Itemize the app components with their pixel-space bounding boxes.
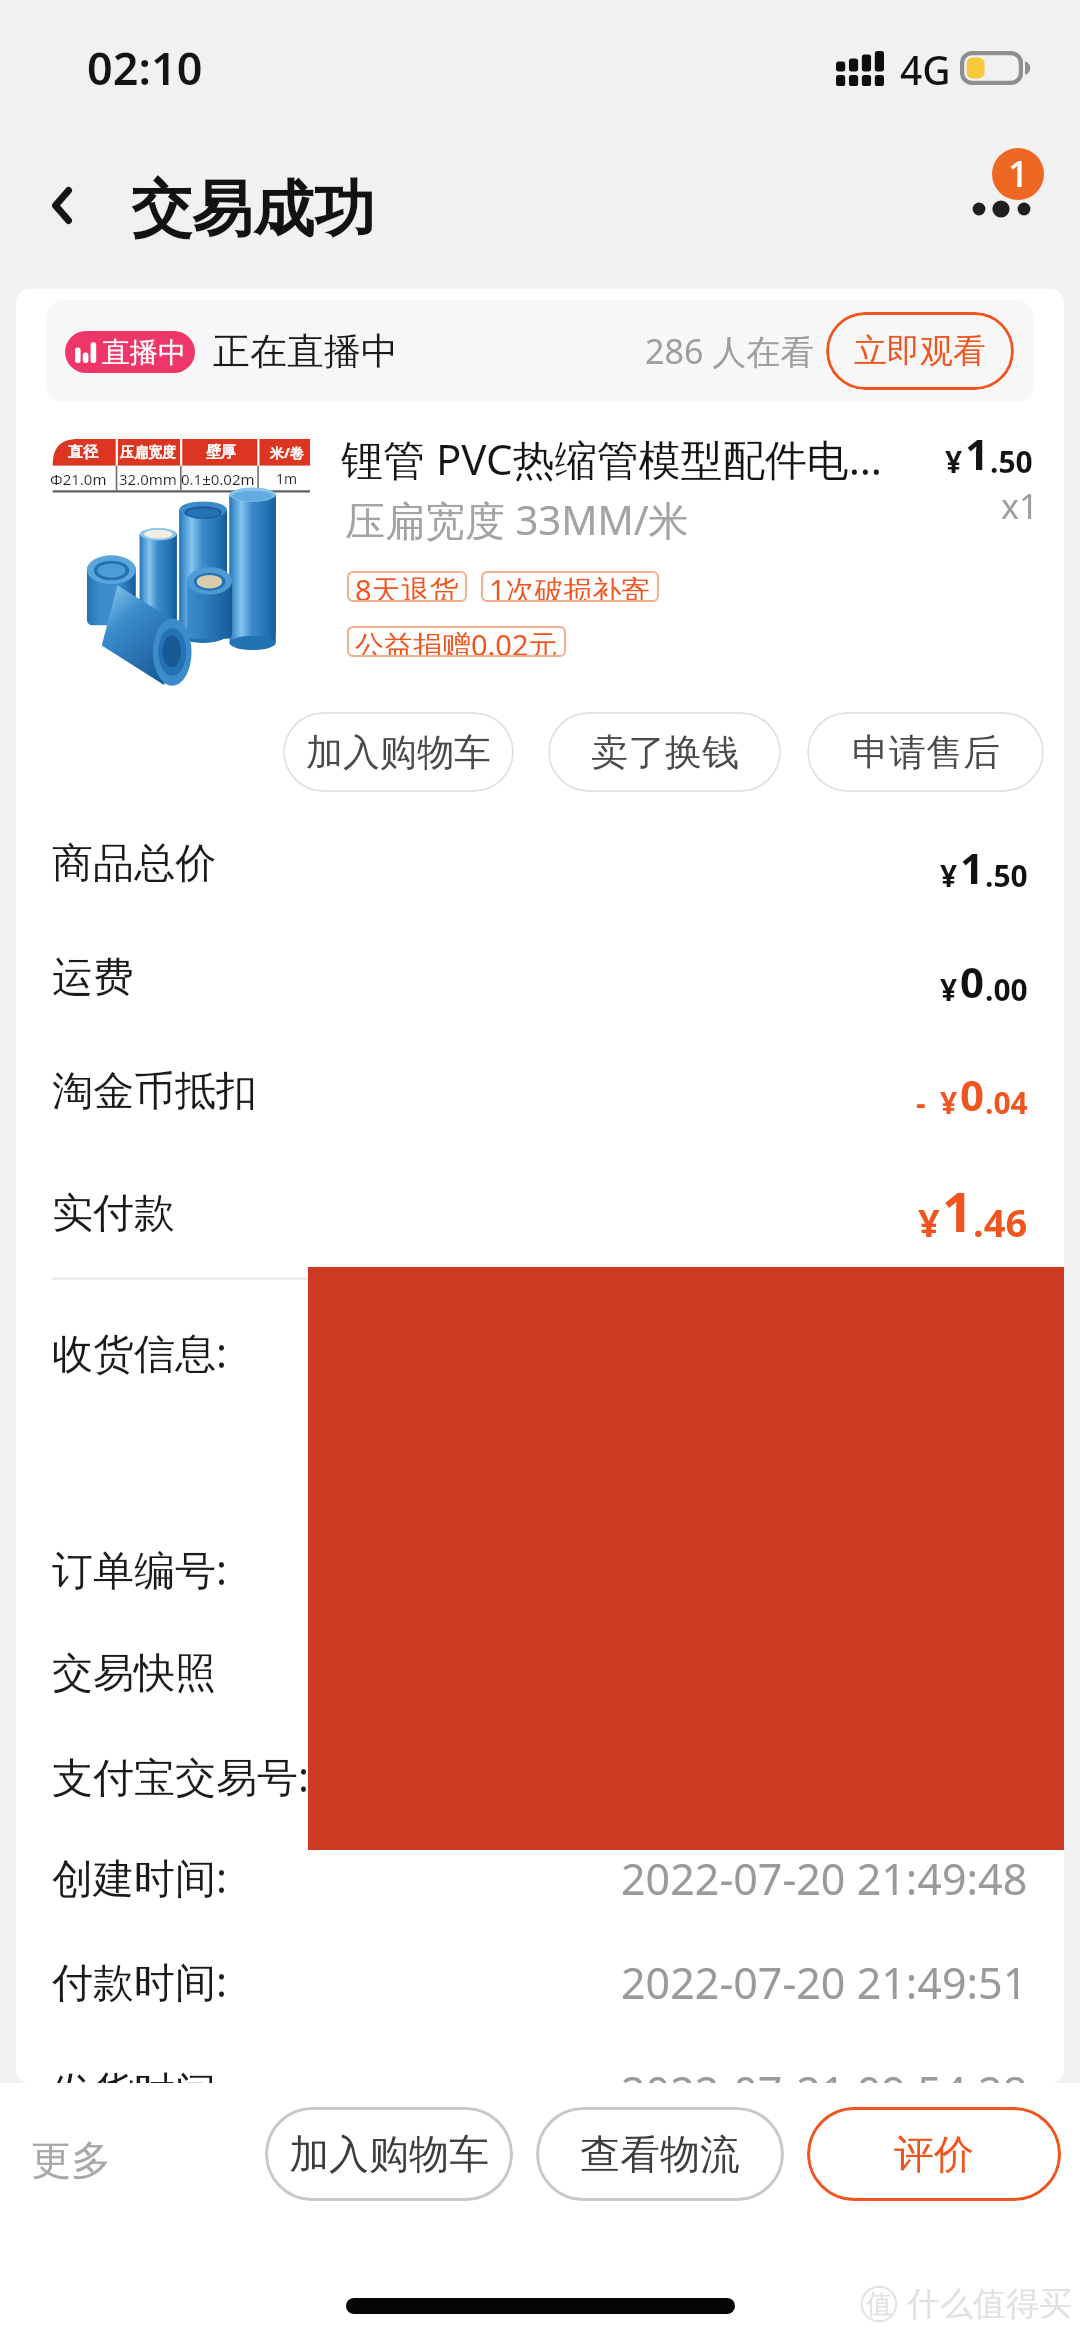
staticText: 2022-07-20 21:49:51	[621, 1953, 1028, 2012]
staticText: 1	[965, 425, 990, 482]
staticText: 交易快照	[52, 1648, 216, 1700]
staticText: .50	[990, 441, 1033, 482]
staticText: 立即观看	[854, 330, 986, 372]
staticText: ¥	[940, 1082, 958, 1123]
button[interactable]: Order item 锂管 PVC热缩管模型配件电	[34, 418, 1046, 706]
button[interactable]: More options	[952, 146, 1054, 242]
staticText: 0	[960, 1066, 985, 1123]
staticText: 压扁宽度	[120, 444, 176, 462]
staticText: 订单编号:	[52, 1541, 227, 1597]
button[interactable]: 评价	[807, 2107, 1061, 2201]
button[interactable]: 1次破损补寄	[481, 571, 659, 602]
staticText: 淘金币抵扣	[52, 1066, 257, 1118]
button[interactable]: 更多	[17, 2119, 125, 2201]
staticText: 1次破损补寄	[489, 570, 651, 601]
button[interactable]	[34, 1939, 1046, 2009]
button[interactable]: 直播中	[46, 300, 1034, 402]
staticText: ¥	[918, 1196, 940, 1248]
staticText: 1m	[276, 469, 298, 488]
staticText: 付款时间:	[52, 1953, 227, 2009]
button[interactable]	[34, 1835, 1046, 1905]
button[interactable]: 公益捐赠0.02元	[347, 626, 566, 657]
staticText: 加入购物车	[306, 729, 491, 776]
staticText: -	[916, 1082, 926, 1123]
staticText: 286 人在看	[645, 328, 815, 374]
staticText: .50	[985, 855, 1028, 896]
staticText: 0	[960, 953, 985, 1010]
button[interactable]: 加入购物车	[283, 712, 514, 792]
button[interactable]	[34, 1634, 1046, 1704]
staticText: 实付款	[52, 1188, 175, 1240]
staticText: 2022-07-21 09:54:28	[621, 2062, 1028, 2121]
staticText: 1	[942, 1174, 973, 1248]
staticText: 更多	[31, 2135, 111, 2185]
staticText: 公益捐赠0.02元	[355, 625, 558, 656]
staticText: 直播中	[102, 335, 186, 370]
staticText: Φ21.0mm	[50, 469, 115, 489]
staticText: x1	[1001, 483, 1039, 529]
button[interactable]: 立即观看	[826, 312, 1014, 390]
staticText: 1	[960, 839, 985, 896]
staticText: 0.1±0.02mm	[181, 469, 260, 489]
staticText: 交易成功	[131, 171, 375, 248]
staticText: 02:10	[87, 37, 203, 98]
staticText: 米/卷	[270, 443, 304, 462]
staticText: 值	[866, 2288, 892, 2321]
staticText: 什么值得买	[907, 2283, 1072, 2325]
staticText: 8天退货	[355, 570, 459, 601]
staticText: 卖了换钱	[591, 729, 739, 776]
staticText: 加入购物车	[289, 2129, 489, 2179]
button[interactable]: Back	[14, 157, 110, 253]
staticText: 申请售后	[852, 729, 1000, 776]
button[interactable]: 加入购物车	[265, 2107, 513, 2201]
staticText: 创建时间:	[52, 1849, 227, 1905]
button[interactable]: 申请售后	[807, 712, 1044, 792]
staticText: .00	[985, 969, 1028, 1010]
staticText: .46	[973, 1196, 1028, 1248]
staticText: 1	[1008, 149, 1029, 198]
staticText: 正在直播中	[213, 328, 398, 375]
staticText: 锂管 PVC热缩管模型配件电…	[341, 430, 941, 487]
staticText: 查看物流	[580, 2129, 740, 2179]
staticText: ¥	[940, 855, 958, 896]
staticText: 收货信息:	[52, 1324, 227, 1380]
button[interactable]	[34, 1310, 1046, 1380]
staticText: ¥	[940, 969, 958, 1010]
staticText: 支付宝交易号:	[52, 1748, 309, 1804]
staticText: 发货时间:	[52, 2062, 227, 2118]
button[interactable]	[34, 1527, 1046, 1597]
staticText: 32.0mm	[119, 469, 177, 489]
staticText: .04	[985, 1082, 1028, 1123]
staticText: 评价	[894, 2129, 974, 2179]
staticText: ¥	[945, 441, 963, 482]
staticText: 2022-07-20 21:49:48	[621, 1849, 1028, 1908]
staticText: 运费	[52, 952, 134, 1004]
button[interactable]: 卖了换钱	[548, 712, 781, 792]
staticText: 壁厚	[206, 443, 236, 462]
staticText: 直径	[68, 443, 98, 462]
staticText: 压扁宽度 33MM/米	[345, 492, 689, 547]
button[interactable]: 8天退货	[347, 571, 467, 602]
button[interactable]: 查看物流	[536, 2107, 784, 2201]
staticText: 商品总价	[52, 838, 216, 890]
staticText: 4G	[900, 43, 951, 96]
button[interactable]	[34, 1734, 1046, 1804]
button[interactable]	[34, 2048, 1046, 2118]
